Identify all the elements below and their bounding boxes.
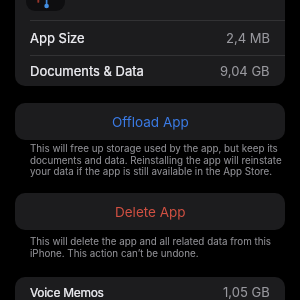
button[interactable]: Voice Memos: [15, 277, 285, 300]
staticText: 9,04 GB: [220, 63, 270, 79]
staticText: 2,4 MB: [226, 30, 270, 46]
staticText: Delete App: [115, 204, 186, 220]
staticText: Documents & Data: [30, 63, 144, 79]
staticText: This will delete the app and all related…: [30, 236, 272, 259]
staticText: This will free up storage used by the ap…: [30, 143, 282, 177]
button[interactable]: Delete App: [15, 193, 285, 230]
button[interactable]: App Size: [15, 21, 285, 55]
staticText: Offload App: [112, 114, 189, 130]
button[interactable]: Offload App: [15, 103, 285, 140]
staticText: Voice Memos: [30, 285, 104, 300]
staticText: App Size: [30, 30, 85, 46]
button[interactable]: Documents & Data: [15, 56, 285, 86]
staticText: 1,05 GB: [223, 284, 270, 300]
